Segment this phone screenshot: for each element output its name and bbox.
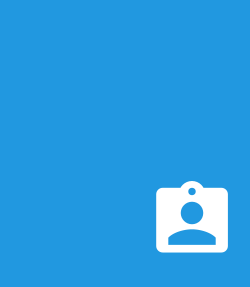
button[interactable]: Contact badge [156,181,228,252]
